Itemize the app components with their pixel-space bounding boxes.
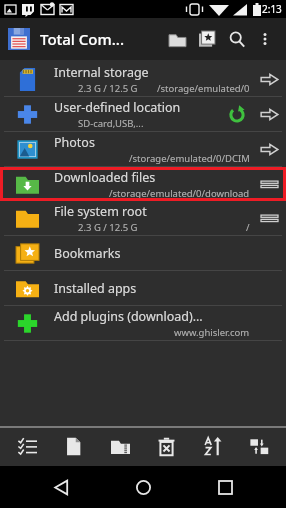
button[interactable]: Home xyxy=(122,466,164,508)
button[interactable]: Recents xyxy=(204,466,246,508)
button[interactable]: Sort xyxy=(193,426,233,466)
staticText: Total Com... xyxy=(40,29,124,49)
button[interactable]: Folders xyxy=(162,24,192,54)
button[interactable]: Add plugins (download)... xyxy=(0,306,286,340)
button[interactable]: New file xyxy=(53,426,93,466)
staticText: Add plugins (download)... xyxy=(54,308,203,325)
button[interactable]: Search xyxy=(222,24,252,54)
button[interactable]: Bookmarks xyxy=(0,236,286,270)
button[interactable]: Bookmarks xyxy=(192,24,222,54)
button[interactable]: File system root xyxy=(0,201,286,235)
staticText: Photos xyxy=(54,134,95,151)
staticText: 2:13 xyxy=(262,2,282,16)
button[interactable]: Installed apps xyxy=(0,271,286,305)
staticText: 2.3 G / 12.5 G xyxy=(78,221,138,234)
staticText: /storage/emulated/0/download xyxy=(109,187,250,200)
staticText: www.ghisler.com xyxy=(174,326,250,339)
button[interactable]: Internal storage xyxy=(0,62,286,96)
staticText: Installed apps xyxy=(54,280,137,297)
button[interactable]: More options xyxy=(252,26,278,52)
button[interactable]: Photos xyxy=(0,132,286,166)
staticText: / xyxy=(246,221,250,234)
staticText: User-defined location xyxy=(54,99,181,116)
staticText: /storage/emulated/0/DCIM xyxy=(129,152,250,165)
staticText: Downloaded files xyxy=(54,169,156,186)
staticText: 2.3 G / 12.5 G xyxy=(78,82,138,95)
button[interactable]: Select xyxy=(7,426,47,466)
button[interactable]: Transfer xyxy=(239,426,279,466)
staticText: SD-card,USB,... xyxy=(78,117,144,130)
staticText: /storage/emulated/0 xyxy=(157,82,250,95)
button[interactable]: Delete xyxy=(146,426,186,466)
staticText: File system root xyxy=(54,203,147,220)
button[interactable]: Downloaded files xyxy=(0,167,286,201)
staticText: Bookmarks xyxy=(54,245,121,262)
button[interactable]: Back xyxy=(40,466,82,508)
button[interactable]: Zip xyxy=(100,426,140,466)
button[interactable]: User-defined location xyxy=(0,97,286,131)
staticText: Internal storage xyxy=(54,64,149,81)
